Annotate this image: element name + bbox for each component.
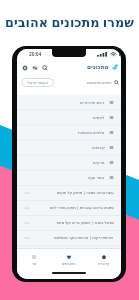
staticText: 20:04: [29, 51, 42, 58]
staticText: מרקים: [93, 160, 105, 165]
button[interactable]: Settings: [20, 63, 29, 72]
button[interactable]: חיפוש מתכונים: [87, 80, 119, 85]
staticText: עוגת גבינה אפויה | מתכון קל וטעים: [57, 190, 114, 195]
staticText: לחמים: [93, 115, 105, 120]
staticText: מתכונים: [87, 64, 109, 71]
button[interactable]: עוד: [17, 249, 51, 270]
staticText: סלטים ותוספות: [78, 130, 105, 136]
button[interactable]: Search: [40, 63, 49, 72]
button[interactable]: מרקים: [17, 155, 121, 170]
button[interactable]: דף הבית: [86, 249, 121, 270]
staticText: המועדפים: [62, 262, 76, 266]
staticText: בשר ועוף: [88, 175, 105, 181]
staticText: חיפוש מתכונים: [87, 80, 112, 85]
staticText: קינוחים: [92, 145, 105, 150]
button[interactable]: שניצל בתנור | מתכון בריא וקל מאוד: [17, 215, 121, 230]
button[interactable]: מתכונים: [87, 64, 118, 71]
staticText: שניצל בתנור | מתכון בריא וקל מאוד: [56, 220, 114, 225]
button[interactable]: חביתת ירקות | ארוחת בוקר מושלמת: [17, 230, 121, 245]
staticText: שמרו מתכונים אהובים: [0, 13, 139, 30]
staticText: הקטגוריות שלי: [27, 80, 48, 85]
button[interactable]: הקטגוריות שלי: [21, 78, 54, 87]
button[interactable]: קינוחים: [17, 140, 121, 155]
button[interactable]: המועדפים: [51, 249, 86, 270]
button[interactable]: דגים ופירות ים: [17, 95, 121, 110]
button[interactable]: בשר ועוף: [17, 170, 121, 185]
button[interactable]: עוגת גבינה אפויה | מתכון קל וטעים: [17, 185, 121, 200]
staticText: פסטה ברוטב עגבניות | מתכון מהיר ליום: [50, 205, 114, 210]
staticText: עוד: [32, 262, 37, 266]
staticText: חביתת ירקות | ארוחת בוקר מושלמת: [54, 235, 114, 240]
staticText: דף הבית: [98, 262, 110, 266]
button[interactable]: לחמים: [17, 110, 121, 125]
staticText: דגים ופירות ים: [80, 100, 105, 106]
button[interactable]: Filter: [30, 63, 39, 72]
button[interactable]: סלטים ותוספות: [17, 125, 121, 140]
button[interactable]: פסטה ברוטב עגבניות | מתכון מהיר ליום: [17, 200, 121, 215]
